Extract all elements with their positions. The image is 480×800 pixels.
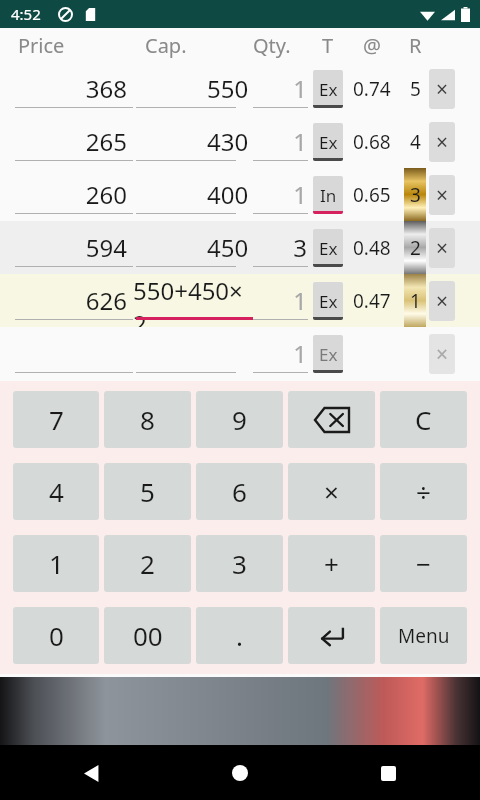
button[interactable]: 00 bbox=[104, 607, 191, 664]
button[interactable] bbox=[133, 327, 253, 380]
button[interactable]: 3 bbox=[196, 535, 283, 592]
button[interactable]: 1 bbox=[253, 274, 311, 327]
staticText: 0.65 bbox=[353, 182, 391, 208]
staticText: 400 bbox=[207, 178, 249, 211]
button[interactable]: ÷ bbox=[380, 463, 467, 520]
button[interactable]: 450 bbox=[133, 221, 253, 274]
staticText: 0.47 bbox=[353, 288, 391, 314]
staticText: Ex bbox=[319, 343, 338, 366]
button[interactable]: Delete row bbox=[429, 69, 455, 109]
button[interactable]: C bbox=[380, 391, 467, 448]
button[interactable] bbox=[0, 327, 133, 380]
button[interactable]: 626 bbox=[0, 274, 133, 327]
staticText: 450 bbox=[207, 231, 249, 264]
button[interactable]: Home bbox=[220, 753, 260, 793]
staticText: 6 bbox=[232, 474, 247, 509]
button[interactable]: 8 bbox=[104, 391, 191, 448]
button[interactable]: 550 bbox=[133, 62, 253, 115]
button[interactable]: Delete row bbox=[429, 334, 455, 374]
button[interactable]: In bbox=[313, 176, 343, 214]
staticText: T bbox=[322, 32, 334, 59]
staticText: + bbox=[324, 546, 339, 581]
button[interactable]: Delete row bbox=[429, 175, 455, 215]
button[interactable]: 260 bbox=[0, 168, 133, 221]
staticText: In bbox=[320, 184, 337, 207]
button[interactable]: Ex bbox=[313, 70, 343, 108]
staticText: × bbox=[436, 340, 449, 369]
button[interactable]: − bbox=[380, 535, 467, 592]
staticText: × bbox=[436, 128, 449, 157]
staticText: ÷ bbox=[416, 474, 431, 509]
button[interactable]: 6 bbox=[196, 463, 283, 520]
staticText: 430 bbox=[207, 125, 249, 158]
staticText: × bbox=[436, 287, 449, 316]
staticText: 0.74 bbox=[353, 76, 391, 102]
staticText: × bbox=[436, 75, 449, 104]
button[interactable]: Delete row bbox=[429, 122, 455, 162]
staticText: 7 bbox=[49, 402, 64, 437]
staticText: 594 bbox=[0, 231, 127, 264]
button[interactable]: 1 bbox=[13, 535, 99, 592]
staticText: Ex bbox=[319, 237, 338, 260]
button[interactable]: 1 bbox=[253, 168, 311, 221]
button[interactable]: 368 bbox=[0, 62, 133, 115]
button[interactable]: Ex bbox=[313, 282, 343, 320]
staticText: R bbox=[409, 32, 422, 59]
button[interactable]: 2 bbox=[104, 535, 191, 592]
button[interactable]: 5 bbox=[104, 463, 191, 520]
staticText: 4:52 bbox=[11, 4, 41, 24]
button[interactable]: Delete row bbox=[429, 228, 455, 268]
button[interactable]: 1 bbox=[253, 115, 311, 168]
button[interactable]: 400 bbox=[133, 168, 253, 221]
staticText: × bbox=[324, 474, 339, 509]
button[interactable]: + bbox=[288, 535, 375, 592]
button[interactable]: Delete row bbox=[429, 281, 455, 321]
staticText: 1 bbox=[253, 72, 307, 105]
button[interactable]: Enter bbox=[288, 607, 375, 664]
button[interactable]: Back bbox=[72, 753, 112, 793]
staticText: 3 bbox=[410, 182, 421, 208]
button[interactable]: 430 bbox=[133, 115, 253, 168]
staticText: 550 bbox=[207, 72, 249, 105]
staticText: 3 bbox=[253, 231, 307, 264]
staticText: Qty. bbox=[253, 32, 291, 59]
button[interactable]: 4 bbox=[13, 463, 99, 520]
button[interactable]: Ex bbox=[313, 123, 343, 161]
button[interactable]: Ex bbox=[313, 335, 343, 373]
staticText: 1 bbox=[253, 125, 307, 158]
button[interactable]: 594 bbox=[0, 221, 133, 274]
button[interactable]: 3 bbox=[253, 221, 311, 274]
staticText: 260 bbox=[0, 178, 127, 211]
staticText: 5 bbox=[140, 474, 155, 509]
button[interactable]: 550+450×2 bbox=[133, 274, 253, 327]
staticText: . bbox=[236, 618, 243, 653]
staticText: Ex bbox=[319, 131, 338, 154]
staticText: 5 bbox=[410, 76, 421, 102]
staticText: Cap. bbox=[145, 32, 187, 59]
staticText: 626 bbox=[0, 284, 127, 317]
staticText: 00 bbox=[133, 618, 163, 653]
button[interactable]: Backspace bbox=[288, 391, 375, 448]
staticText: 0.48 bbox=[353, 235, 391, 261]
button[interactable]: Menu bbox=[380, 607, 467, 664]
staticText: × bbox=[436, 181, 449, 210]
staticText: Ex bbox=[319, 290, 338, 313]
button[interactable]: Ex bbox=[313, 229, 343, 267]
staticText: 368 bbox=[0, 72, 127, 105]
staticText: 1 bbox=[49, 546, 64, 581]
button[interactable]: 9 bbox=[196, 391, 283, 448]
button[interactable]: 0 bbox=[13, 607, 99, 664]
button[interactable]: Recents bbox=[368, 753, 408, 793]
staticText: 1 bbox=[253, 178, 307, 211]
button[interactable]: 1 bbox=[253, 62, 311, 115]
staticText: Ex bbox=[319, 78, 338, 101]
button[interactable]: 1 bbox=[253, 327, 311, 380]
staticText: Price bbox=[18, 32, 65, 59]
button[interactable]: 265 bbox=[0, 115, 133, 168]
button[interactable]: . bbox=[196, 607, 283, 664]
button[interactable]: × bbox=[288, 463, 375, 520]
button[interactable]: 7 bbox=[13, 391, 99, 448]
staticText: 4 bbox=[410, 129, 421, 155]
staticText: Menu bbox=[398, 623, 450, 649]
